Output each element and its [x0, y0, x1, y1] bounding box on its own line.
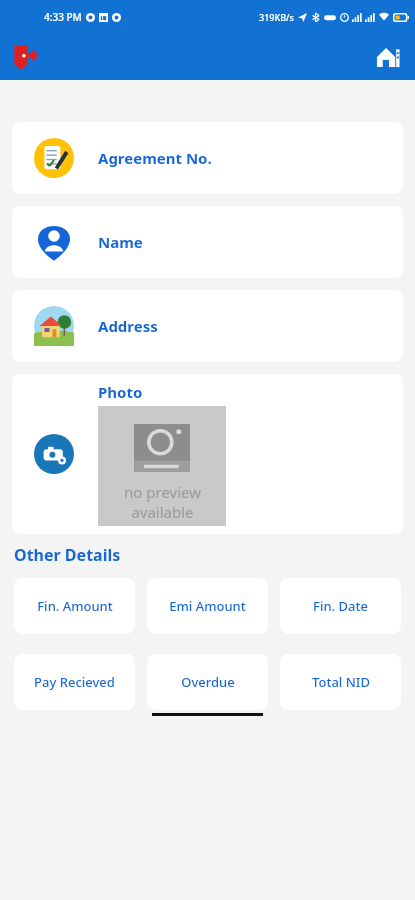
button[interactable]: Logout — [8, 39, 44, 75]
button[interactable]: Address — [12, 290, 403, 362]
button[interactable]: Pay Recieved — [14, 654, 135, 710]
staticText: Agreement No. — [98, 148, 212, 168]
button[interactable]: Fin. Amount — [14, 578, 135, 634]
staticText: Name — [98, 232, 143, 252]
button[interactable]: Total NID — [280, 654, 401, 710]
staticText: available — [131, 502, 194, 522]
button[interactable]: Photo — [12, 374, 403, 534]
button[interactable]: Fin. Date — [280, 578, 401, 634]
staticText: Address — [98, 316, 158, 336]
staticText: Other Details — [14, 544, 121, 566]
staticText: Emi Amount — [169, 597, 246, 615]
staticText: no preview — [124, 482, 201, 502]
button[interactable]: Name — [12, 206, 403, 278]
button[interactable]: Agreement No. — [12, 122, 403, 194]
staticText: Photo — [98, 382, 143, 402]
button[interactable]: Home — [371, 40, 405, 74]
button[interactable]: Overdue — [147, 654, 268, 710]
button[interactable]: Emi Amount — [147, 578, 268, 634]
staticText: Fin. Amount — [37, 597, 113, 615]
staticText: Fin. Date — [313, 597, 368, 615]
staticText: 4:33 PM — [44, 10, 82, 24]
staticText: 319KB/s — [259, 11, 294, 23]
staticText: Pay Recieved — [34, 673, 115, 691]
staticText: Total NID — [312, 673, 370, 691]
staticText: Overdue — [181, 673, 235, 691]
